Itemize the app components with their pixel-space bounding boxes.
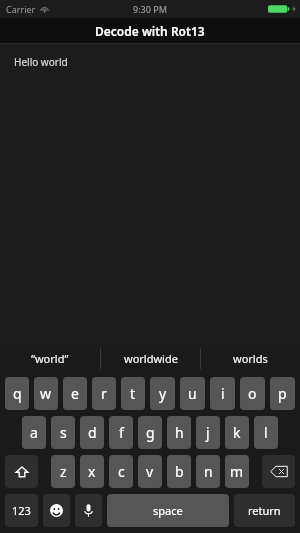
staticText: return <box>248 503 281 518</box>
staticText: w <box>40 384 52 403</box>
button[interactable]: c <box>109 455 133 488</box>
button[interactable]: g <box>138 416 162 449</box>
staticText: o <box>248 384 257 403</box>
staticText: p <box>278 384 287 403</box>
staticText: “world” <box>31 351 69 366</box>
staticText: l <box>264 423 268 442</box>
button[interactable]: worlds <box>201 343 300 374</box>
staticText: f <box>119 423 124 442</box>
staticText: k <box>233 423 241 442</box>
button[interactable]: i <box>210 377 235 410</box>
button[interactable]: l <box>254 416 278 449</box>
staticText: q <box>13 384 22 403</box>
button[interactable]: y <box>150 377 175 410</box>
staticText: r <box>101 384 107 403</box>
staticText: e <box>71 384 79 403</box>
staticText: n <box>204 462 213 481</box>
staticText: g <box>146 423 155 442</box>
staticText: Hello world <box>14 55 68 69</box>
staticText: i <box>221 384 225 403</box>
button[interactable]: space <box>107 494 229 527</box>
button[interactable]: p <box>270 377 295 410</box>
button[interactable]: 123 <box>5 494 38 527</box>
staticText: t <box>130 384 136 403</box>
button[interactable]: q <box>5 377 29 410</box>
button[interactable]: u <box>180 377 205 410</box>
staticText: worldwide <box>124 351 178 366</box>
staticText: j <box>206 423 210 442</box>
staticText: z <box>60 462 67 481</box>
button[interactable]: t <box>121 377 145 410</box>
button[interactable]: x <box>80 455 104 488</box>
button[interactable]: d <box>80 416 104 449</box>
button[interactable]: “world” <box>0 343 100 374</box>
button[interactable]: Backspace <box>262 455 295 488</box>
button[interactable]: s <box>51 416 75 449</box>
button[interactable]: z <box>51 455 75 488</box>
staticText: v <box>146 462 154 481</box>
button[interactable]: r <box>92 377 116 410</box>
button[interactable]: e <box>63 377 87 410</box>
staticText: d <box>88 423 97 442</box>
staticText: 9:30 PM <box>133 3 167 15</box>
staticText: m <box>230 462 244 481</box>
staticText: u <box>188 384 197 403</box>
button[interactable]: o <box>240 377 265 410</box>
staticText: c <box>118 462 125 481</box>
staticText: b <box>175 462 184 481</box>
button[interactable]: worldwide <box>101 343 200 374</box>
button[interactable]: return <box>234 494 295 527</box>
button[interactable]: Emoji <box>43 494 70 527</box>
staticText: a <box>30 423 38 442</box>
staticText: s <box>60 423 67 442</box>
staticText: Decode with Rot13 <box>95 23 205 39</box>
staticText: x <box>88 462 96 481</box>
staticText: worlds <box>233 351 268 366</box>
button[interactable]: Dictation <box>75 494 102 527</box>
staticText: space <box>153 503 183 518</box>
button[interactable]: a <box>22 416 46 449</box>
button[interactable]: j <box>196 416 220 449</box>
button[interactable]: w <box>34 377 58 410</box>
button[interactable]: v <box>138 455 162 488</box>
button[interactable]: h <box>167 416 191 449</box>
button[interactable]: m <box>225 455 249 488</box>
staticText: Carrier <box>6 3 36 15</box>
staticText: 123 <box>12 503 31 518</box>
staticText: h <box>175 423 184 442</box>
button[interactable]: Shift <box>5 455 38 488</box>
button[interactable]: f <box>109 416 133 449</box>
button[interactable]: b <box>167 455 191 488</box>
button[interactable]: n <box>196 455 220 488</box>
button[interactable]: k <box>225 416 249 449</box>
staticText: y <box>159 384 167 403</box>
